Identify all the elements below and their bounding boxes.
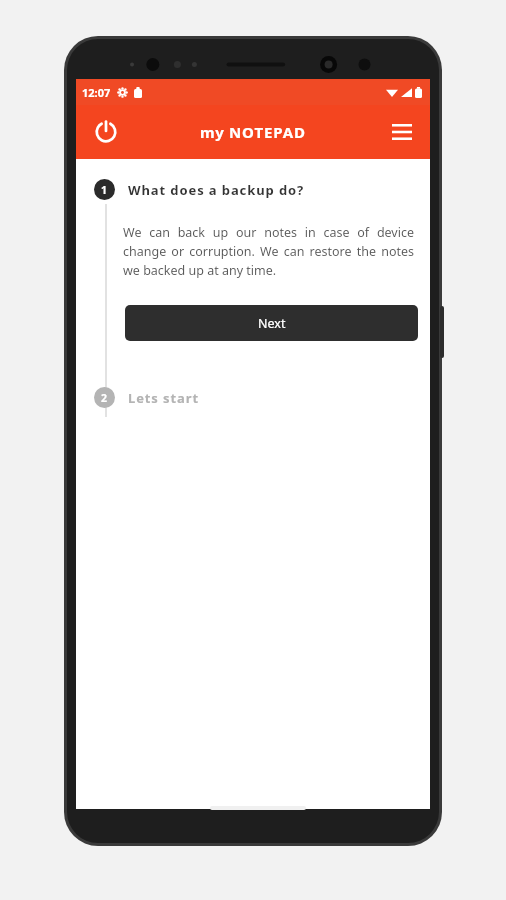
staticText: my <box>200 122 229 142</box>
staticText: We can back up our notes in case of devi… <box>123 224 414 279</box>
staticText: What does a backup do? <box>128 181 305 199</box>
button[interactable]: 2 <box>94 387 414 408</box>
staticText: Lets start <box>128 389 199 407</box>
button[interactable]: Power <box>86 112 126 152</box>
staticText: 1 <box>101 183 108 197</box>
button[interactable]: Next <box>125 305 418 341</box>
staticText: 12:07 <box>82 85 111 100</box>
button[interactable]: 1 <box>94 179 414 200</box>
staticText: Next <box>258 315 286 332</box>
button[interactable]: Menu <box>382 112 422 152</box>
staticText: NOTEPAD <box>229 122 306 142</box>
staticText: 2 <box>101 391 108 405</box>
